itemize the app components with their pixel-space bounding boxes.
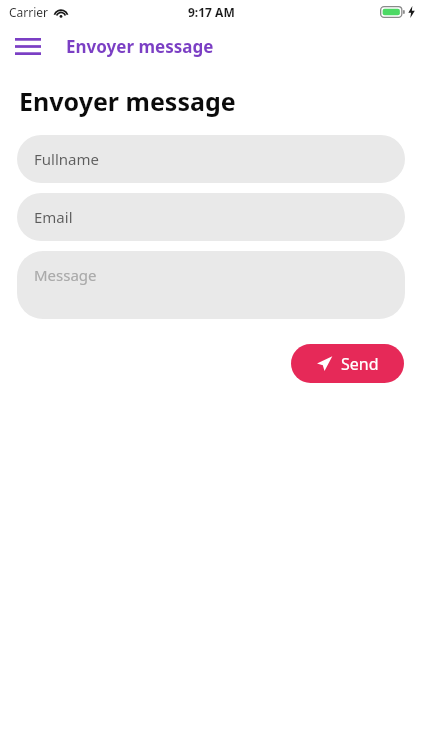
staticText: 9:17 AM <box>188 4 235 20</box>
staticText: Envoyer message <box>66 35 214 58</box>
staticText: Email <box>34 207 73 227</box>
button[interactable]: Send <box>291 344 404 383</box>
button[interactable]: Open navigation menu <box>6 24 50 68</box>
staticText: Envoyer message <box>19 84 236 118</box>
staticText: Message <box>34 265 97 285</box>
staticText: Carrier <box>9 4 49 20</box>
staticText: Fullname <box>34 149 99 169</box>
button[interactable]: Email <box>17 193 405 241</box>
button[interactable]: Fullname <box>17 135 405 183</box>
staticText: Send <box>341 353 379 375</box>
button[interactable]: Message <box>17 251 405 319</box>
